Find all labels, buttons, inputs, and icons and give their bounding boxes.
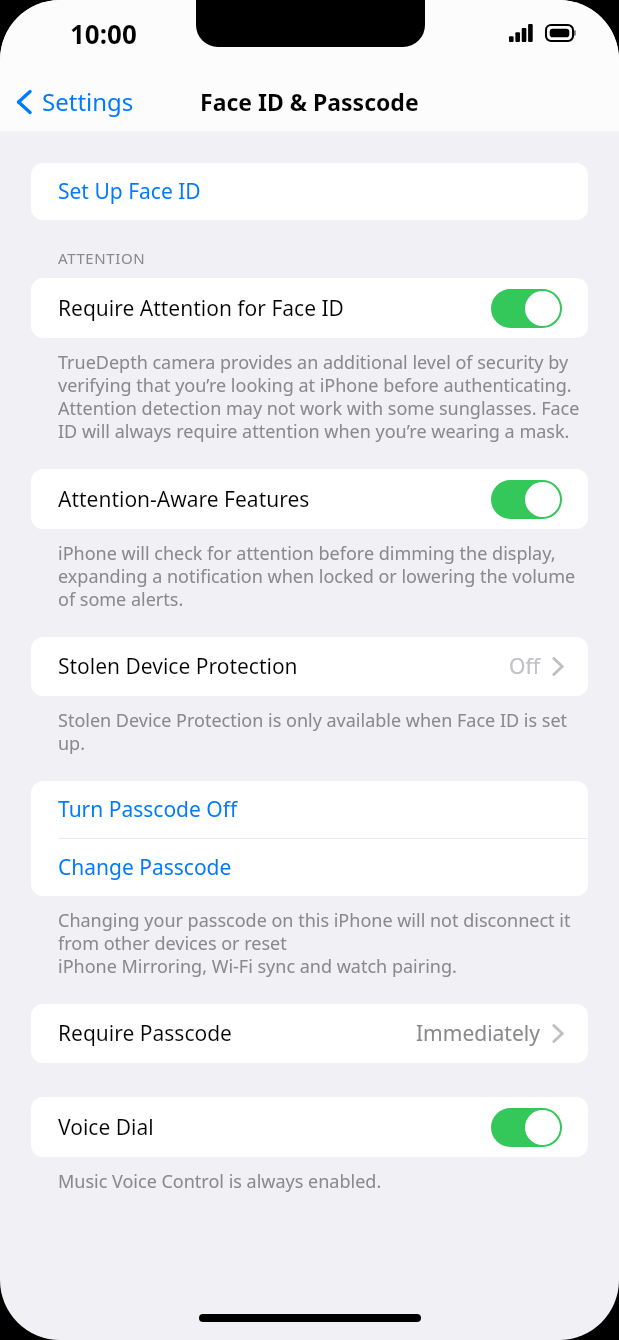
staticText: ATTENTION: [58, 248, 146, 268]
staticText: Require Attention for Face ID: [58, 294, 491, 323]
other: Toggle on: [491, 1108, 562, 1147]
button[interactable]: Change Passcode: [31, 839, 588, 896]
button[interactable]: Require Passcode: [31, 1004, 588, 1063]
other: Toggle on: [491, 480, 562, 519]
button[interactable]: Settings: [0, 79, 144, 124]
staticText: iPhone will check for attention before d…: [58, 541, 586, 611]
staticText: 10:00: [70, 16, 137, 51]
staticText: Stolen Device Protection is only availab…: [58, 708, 586, 755]
button[interactable]: Voice Dial: [31, 1097, 588, 1157]
staticText: Change Passcode: [58, 853, 232, 882]
staticText: Stolen Device Protection: [58, 652, 509, 681]
staticText: Turn Passcode Off: [58, 795, 238, 824]
button[interactable]: Turn Passcode Off: [31, 781, 588, 838]
staticText: Require Passcode: [58, 1019, 416, 1048]
staticText: Settings: [42, 85, 134, 118]
button[interactable]: Require Attention for Face ID: [31, 278, 588, 338]
staticText: Face ID & Passcode: [200, 86, 419, 117]
staticText: Attention-Aware Features: [58, 485, 491, 514]
staticText: TrueDepth camera provides an additional …: [58, 350, 586, 443]
staticText: Voice Dial: [58, 1113, 491, 1142]
staticText: Changing your passcode on this iPhone wi…: [58, 908, 586, 978]
other: Toggle on: [491, 289, 562, 328]
staticText: Music Voice Control is always enabled.: [58, 1169, 382, 1194]
staticText: Immediately: [416, 1019, 540, 1048]
staticText: Set Up Face ID: [58, 177, 201, 206]
button[interactable]: Stolen Device Protection: [31, 637, 588, 696]
button[interactable]: Attention-Aware Features: [31, 469, 588, 529]
button[interactable]: Set Up Face ID: [31, 163, 588, 220]
staticText: Off: [509, 652, 540, 681]
